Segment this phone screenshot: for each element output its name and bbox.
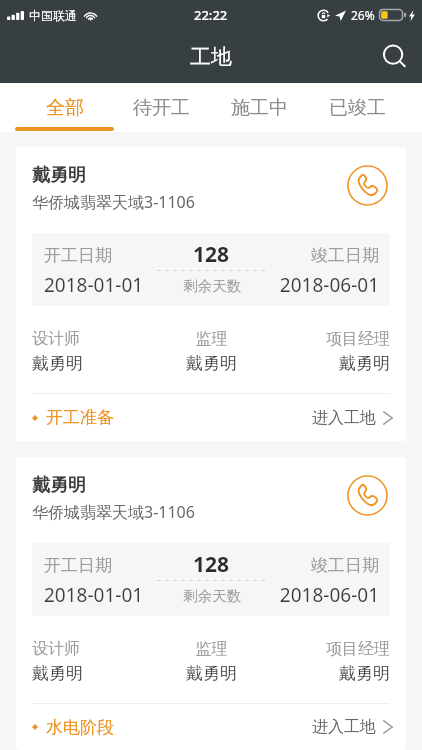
staticText: 开工准备 bbox=[46, 407, 114, 428]
staticText: 戴勇明 bbox=[271, 663, 390, 684]
button[interactable]: 待开工 bbox=[113, 83, 210, 132]
staticText: 2018-01-01 bbox=[44, 272, 154, 298]
staticText: 竣工日期 bbox=[269, 245, 379, 266]
staticText: 设计师 bbox=[32, 329, 152, 349]
staticText: 剩余天数 bbox=[183, 587, 241, 605]
staticText: 22:22 bbox=[194, 6, 228, 24]
staticText: 华侨城翡翠天域3-1106 bbox=[32, 501, 195, 523]
staticText: 监理 bbox=[152, 329, 271, 349]
staticText: 已竣工 bbox=[329, 96, 386, 120]
button[interactable]: 戴勇明 bbox=[16, 147, 406, 441]
staticText: 工地 bbox=[190, 44, 232, 70]
staticText: 竣工日期 bbox=[269, 555, 379, 576]
staticText: 中国联通 bbox=[29, 8, 77, 23]
staticText: 开工日期 bbox=[44, 245, 154, 266]
staticText: 进入工地 bbox=[312, 717, 376, 737]
staticText: 戴勇明 bbox=[32, 474, 86, 497]
staticText: 2018-06-01 bbox=[269, 272, 379, 298]
staticText: 监理 bbox=[152, 639, 271, 659]
staticText: 进入工地 bbox=[312, 408, 376, 428]
button[interactable]: 已竣工 bbox=[308, 83, 406, 132]
staticText: 项目经理 bbox=[271, 329, 390, 349]
staticText: 施工中 bbox=[231, 96, 288, 120]
staticText: 项目经理 bbox=[271, 639, 390, 659]
button[interactable]: 进入工地 bbox=[312, 717, 393, 737]
button[interactable]: Call bbox=[346, 474, 388, 516]
button[interactable]: Search bbox=[371, 30, 419, 83]
staticText: 2018-06-01 bbox=[269, 582, 379, 608]
staticText: 设计师 bbox=[32, 639, 152, 659]
staticText: 华侨城翡翠天域3-1106 bbox=[32, 191, 195, 213]
staticText: 戴勇明 bbox=[271, 353, 390, 374]
staticText: 戴勇明 bbox=[152, 353, 271, 374]
button[interactable]: 施工中 bbox=[210, 83, 308, 132]
staticText: 全部 bbox=[46, 96, 84, 120]
button[interactable]: 进入工地 bbox=[312, 408, 393, 428]
button[interactable]: 戴勇明 bbox=[16, 457, 406, 750]
staticText: 2018-01-01 bbox=[44, 582, 154, 608]
staticText: 戴勇明 bbox=[32, 164, 86, 187]
staticText: 128 bbox=[193, 550, 230, 579]
staticText: 26% bbox=[351, 7, 375, 23]
staticText: 戴勇明 bbox=[32, 353, 152, 374]
staticText: 戴勇明 bbox=[152, 663, 271, 684]
staticText: 剩余天数 bbox=[183, 277, 241, 295]
staticText: 待开工 bbox=[133, 96, 190, 120]
button[interactable]: 全部 bbox=[16, 83, 113, 132]
staticText: 戴勇明 bbox=[32, 663, 152, 684]
button[interactable]: Call bbox=[346, 164, 388, 206]
staticText: 水电阶段 bbox=[46, 717, 114, 738]
staticText: 128 bbox=[193, 240, 230, 269]
staticText: 开工日期 bbox=[44, 555, 154, 576]
